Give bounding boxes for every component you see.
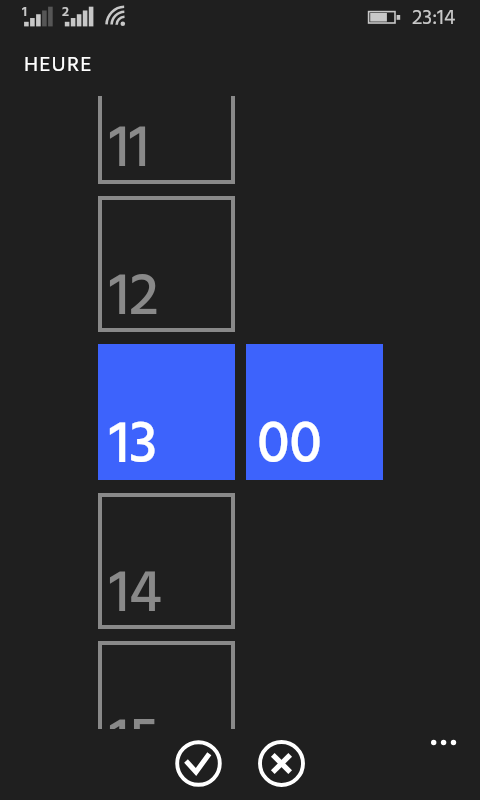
button[interactable]: 15 <box>98 641 235 729</box>
button[interactable]: 12 <box>98 196 235 332</box>
staticText: 11 <box>109 103 149 199</box>
button[interactable]: 00 <box>246 344 383 480</box>
staticText: 13 <box>109 399 157 495</box>
staticText: 23:14 <box>412 2 456 36</box>
button[interactable]: Accept <box>174 739 223 788</box>
staticText: HEURE <box>24 48 93 83</box>
button[interactable]: 13 <box>98 344 235 480</box>
button[interactable]: 11 <box>98 96 235 184</box>
button[interactable]: Cancel <box>257 739 306 788</box>
staticText: 12 <box>109 251 159 347</box>
button[interactable]: More options <box>418 728 470 758</box>
staticText: 00 <box>257 399 322 495</box>
button[interactable]: 14 <box>98 493 235 629</box>
staticText: 2 <box>62 1 69 23</box>
staticText: 15 <box>109 696 160 729</box>
staticText: 14 <box>109 548 162 644</box>
staticText: 1 <box>22 1 28 23</box>
